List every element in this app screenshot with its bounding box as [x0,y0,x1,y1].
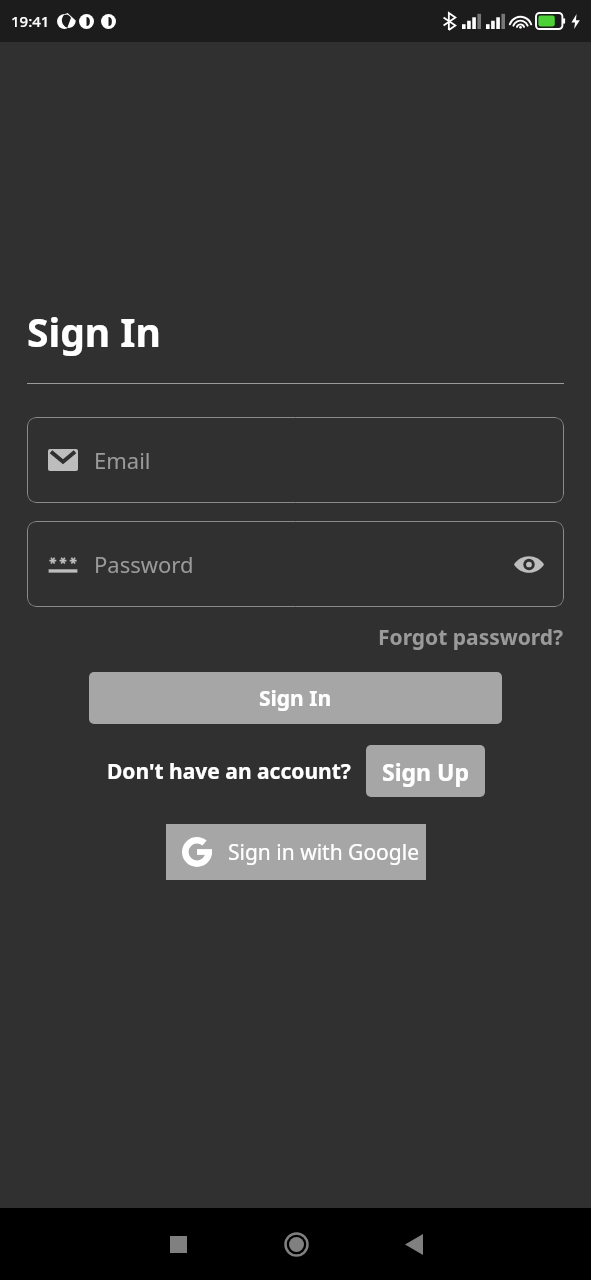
button[interactable]: Forgot password? [378,619,564,656]
button[interactable]: Home [237,1208,355,1280]
staticText: 19:41 [11,11,50,31]
staticText: Forgot password? [378,623,564,652]
button[interactable]: Password [27,521,564,607]
staticText: Password [94,549,512,579]
button[interactable]: Sign In [89,672,502,724]
button[interactable]: Back [355,1208,473,1280]
button[interactable]: Recents [119,1208,237,1280]
staticText: Don't have an account? [107,757,351,786]
button[interactable]: Show password [512,547,546,581]
button[interactable]: Sign in with Google [166,824,426,880]
staticText: Sign in with Google [228,838,419,867]
button[interactable]: Sign Up [366,745,485,797]
staticText: Email [94,445,151,475]
staticText: Sign In [27,305,161,358]
staticText: Sign In [259,684,332,713]
staticText: Sign Up [382,756,469,787]
button[interactable]: Email [27,417,564,503]
